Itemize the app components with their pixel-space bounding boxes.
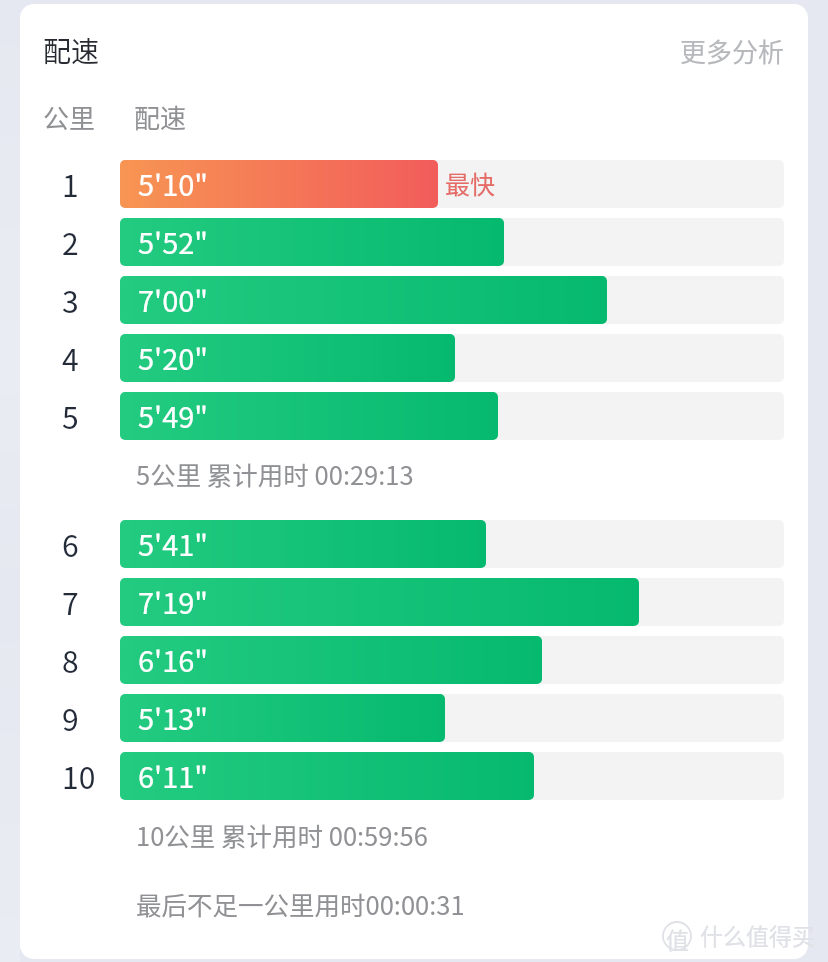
staticText: 更多分析	[680, 32, 785, 70]
staticText: 值	[666, 922, 689, 952]
staticText: 8	[62, 638, 79, 681]
button[interactable]: 第 1 公里 配速 5'10"	[22, 156, 790, 212]
staticText: 10公里 累计用时 00:59:56	[136, 816, 428, 853]
staticText: 2	[62, 220, 79, 263]
staticText: 6'16"	[138, 638, 209, 680]
button[interactable]: 第 10 公里 配速 6'11"	[22, 748, 790, 804]
staticText: 3	[62, 278, 79, 321]
button[interactable]: 第 3 公里 配速 7'00"	[22, 272, 790, 328]
button[interactable]: 第 9 公里 配速 5'13"	[22, 690, 790, 746]
staticText: 7'00"	[138, 278, 209, 320]
button[interactable]: 第 7 公里 配速 7'19"	[22, 574, 790, 630]
other: 什么值得买 logo	[662, 921, 692, 951]
staticText: 6'11"	[138, 754, 209, 796]
button[interactable]: 第 2 公里 配速 5'52"	[22, 214, 790, 270]
staticText: 9	[62, 696, 79, 739]
staticText: 5'41"	[138, 522, 209, 564]
button[interactable]: 第 4 公里 配速 5'20"	[22, 330, 790, 386]
staticText: 5'20"	[138, 336, 209, 378]
button[interactable]: 第 8 公里 配速 6'16"	[22, 632, 790, 688]
staticText: 公里	[43, 98, 96, 136]
staticText: 最快	[445, 165, 496, 201]
staticText: 配速	[43, 30, 100, 71]
staticText: 5'10"	[138, 162, 209, 204]
button[interactable]: 更多分析	[670, 22, 795, 80]
staticText: 5公里 累计用时 00:29:13	[136, 455, 414, 492]
staticText: 配速	[134, 98, 187, 136]
staticText: 6	[62, 522, 79, 565]
staticText: 5'49"	[138, 394, 209, 436]
staticText: 什么值得买	[700, 918, 815, 951]
staticText: 10	[62, 754, 96, 797]
staticText: 4	[62, 336, 79, 379]
staticText: 最后不足一公里用时00:00:31	[136, 885, 465, 922]
button[interactable]: 第 6 公里 配速 5'41"	[22, 516, 790, 572]
staticText: 7	[62, 580, 79, 623]
button[interactable]: 第 5 公里 配速 5'49"	[22, 388, 790, 444]
staticText: 5'52"	[138, 220, 209, 262]
staticText: 5'13"	[138, 696, 209, 738]
staticText: 5	[62, 394, 79, 437]
staticText: 7'19"	[138, 580, 209, 622]
staticText: 1	[62, 162, 79, 205]
